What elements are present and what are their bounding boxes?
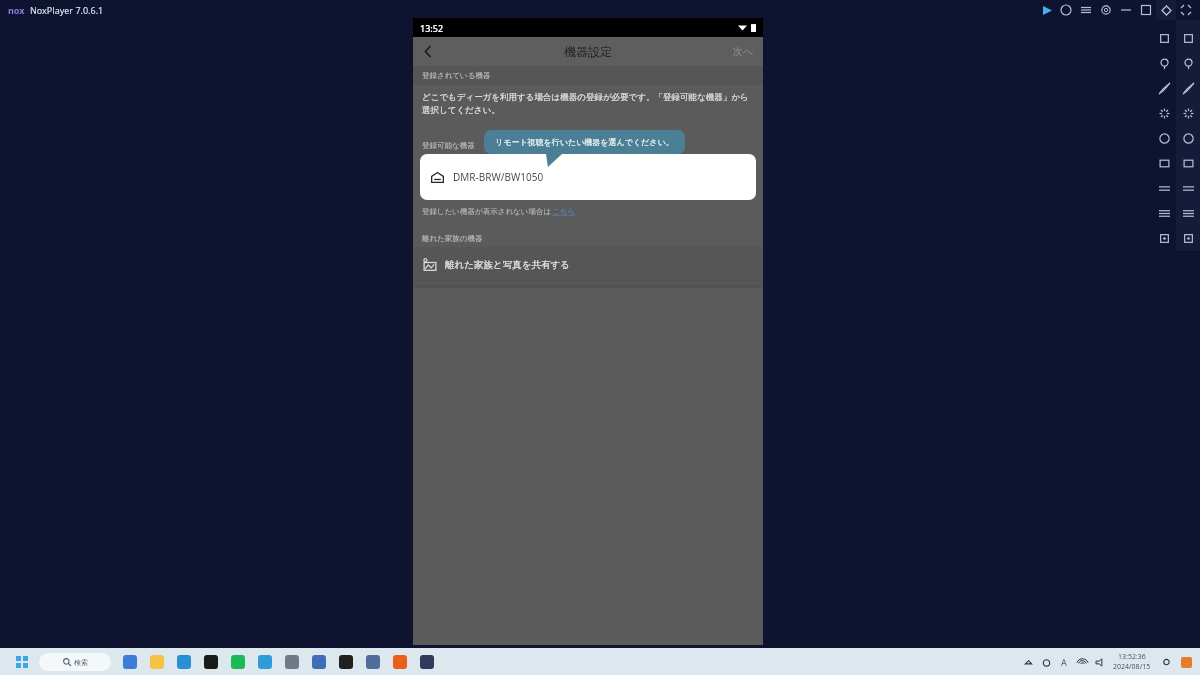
button[interactable]: Show hidden (1019, 653, 1037, 671)
staticText: リモート視聴を行いたい機器を選んでください。 (495, 137, 674, 147)
button[interactable]: L Sync (1152, 176, 1176, 201)
staticText: どこでもディーガを利用する場合は機器の登録が必要です。「登録可能な機器」から選択… (422, 92, 754, 115)
button[interactable]: R Location (1176, 51, 1200, 76)
button[interactable]: Taskbar app 11 (389, 651, 411, 673)
button[interactable]: R Screen record (1176, 151, 1200, 176)
button[interactable]: Taskbar app 9 (335, 651, 357, 673)
button[interactable]: リモート視聴を行いたい機器を選んでください。 (484, 130, 685, 154)
button[interactable]: DMR-BRW/BW1050 (420, 154, 756, 200)
staticText: こちら (552, 207, 576, 216)
button[interactable]: Taskbar app 3 (173, 651, 195, 673)
button[interactable]: L List (1152, 201, 1176, 226)
button[interactable]: R Effect (1176, 101, 1200, 126)
button[interactable]: R Rocket (1176, 76, 1200, 101)
button[interactable]: 検索 (39, 653, 111, 671)
button[interactable]: R Tool (1176, 26, 1200, 51)
button[interactable]: Minimize (1116, 0, 1136, 20)
button[interactable]: R List (1176, 201, 1200, 226)
button[interactable]: Taskbar app 8 (308, 651, 330, 673)
staticText: 登録したい機器が表示されない場合は (422, 207, 552, 216)
button[interactable]: IME (1055, 653, 1073, 671)
button[interactable]: Tray app (1178, 654, 1194, 670)
staticText: 登録可能な機器 (422, 141, 475, 150)
button[interactable]: Menu (1076, 0, 1096, 20)
button[interactable]: L Capture (1152, 226, 1176, 251)
button[interactable]: L Record (1152, 126, 1176, 151)
staticText: A (1061, 656, 1067, 668)
button[interactable]: L Effect (1152, 101, 1176, 126)
button[interactable]: Settings (1096, 0, 1116, 20)
button[interactable]: L Tool (1152, 26, 1176, 51)
button[interactable]: Taskbar app 1 (119, 651, 141, 673)
staticText: NoxPlayer 7.0.6.1 (30, 4, 104, 16)
button[interactable]: Start (11, 651, 33, 673)
button[interactable]: L Screen record (1152, 151, 1176, 176)
button[interactable]: R Sync (1176, 176, 1200, 201)
button[interactable]: Multi instance (1156, 0, 1176, 20)
staticText: 離れた家族と写真を共有する (445, 259, 570, 271)
button[interactable]: Wi-Fi (1073, 653, 1091, 671)
button[interactable]: 次へ (724, 39, 763, 64)
button[interactable]: Fullscreen (1176, 0, 1196, 20)
button[interactable]: Back (413, 37, 443, 66)
button[interactable]: Play store (1038, 1, 1056, 19)
button[interactable]: こちら (552, 207, 576, 216)
staticText: DMR-BRW/BW1050 (453, 170, 544, 184)
button[interactable]: Taskbar app 4 (200, 651, 222, 673)
button[interactable]: 離れた家族と写真を共有する (413, 247, 763, 283)
staticText: 次へ (733, 45, 754, 58)
button[interactable]: Taskbar app 10 (362, 651, 384, 673)
staticText: nox (8, 4, 25, 16)
staticText: 機器設定 (564, 44, 612, 59)
staticText: 検索 (74, 658, 88, 667)
button[interactable]: Maximize (1136, 0, 1156, 20)
button[interactable]: Cloud (1037, 653, 1055, 671)
button[interactable]: L Rocket (1152, 76, 1176, 101)
button[interactable]: Help (1056, 0, 1076, 20)
button[interactable]: Taskbar app 7 (281, 651, 303, 673)
button[interactable]: Taskbar app 6 (254, 651, 276, 673)
button[interactable]: L Location (1152, 51, 1176, 76)
button[interactable]: Volume (1091, 653, 1109, 671)
staticText: 離れた家族の機器 (422, 234, 483, 243)
staticText: 13:52 (420, 22, 444, 34)
button[interactable]: Taskbar app 2 (146, 651, 168, 673)
staticText: 13:52:36 (1118, 652, 1146, 662)
button[interactable]: R Record (1176, 126, 1200, 151)
button[interactable]: Taskbar app 5 (227, 651, 249, 673)
button[interactable]: Notifications (1157, 653, 1175, 671)
button[interactable]: R Capture (1176, 226, 1200, 251)
staticText: 2024/08/15 (1113, 662, 1151, 672)
staticText: 登録されている機器 (422, 71, 491, 80)
button[interactable]: Taskbar app 12 (416, 651, 438, 673)
